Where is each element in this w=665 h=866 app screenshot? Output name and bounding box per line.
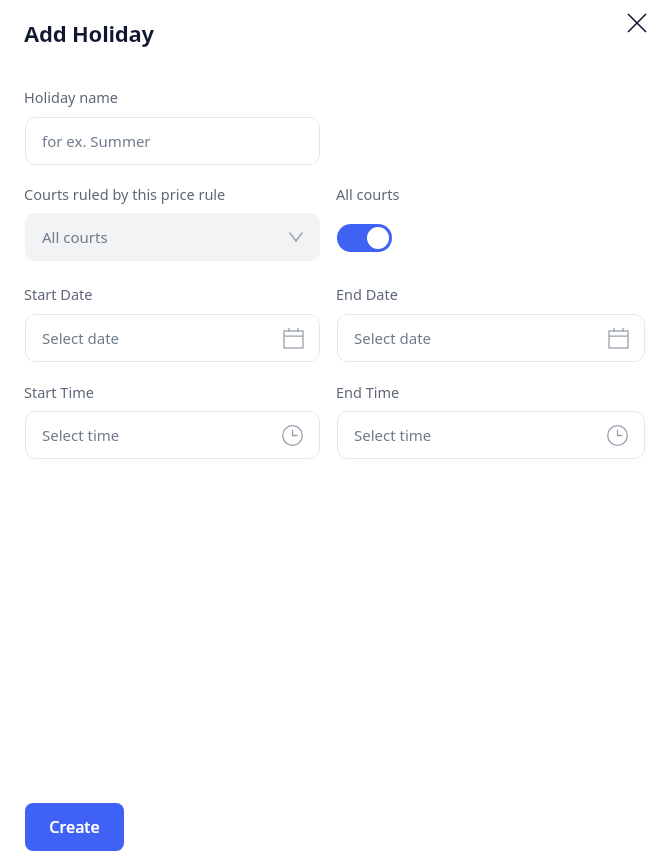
staticText: All courts (336, 184, 400, 204)
button[interactable]: Select date (337, 314, 645, 362)
button[interactable]: Create (25, 803, 124, 851)
button[interactable]: for ex. Summer (25, 117, 320, 165)
staticText: End Time (336, 382, 400, 402)
button[interactable]: Select time (337, 411, 645, 459)
button[interactable]: Select time (25, 411, 320, 459)
staticText: Select date (42, 328, 120, 348)
staticText: Add Holiday (24, 18, 154, 48)
staticText: Start Date (24, 284, 93, 304)
staticText: Holiday name (24, 87, 119, 107)
button[interactable]: All courts toggle (337, 224, 392, 252)
button[interactable]: Close (621, 7, 653, 39)
staticText: Select time (42, 425, 120, 445)
staticText: Start Time (24, 382, 94, 402)
staticText: All courts (42, 227, 108, 247)
staticText: for ex. Summer (42, 131, 151, 151)
staticText: Select date (354, 328, 432, 348)
staticText: Select time (354, 425, 432, 445)
button[interactable]: Select date (25, 314, 320, 362)
button[interactable]: All courts (25, 213, 320, 261)
staticText: End Date (336, 284, 398, 304)
staticText: Create (49, 816, 100, 838)
staticText: Courts ruled by this price rule (24, 184, 226, 204)
